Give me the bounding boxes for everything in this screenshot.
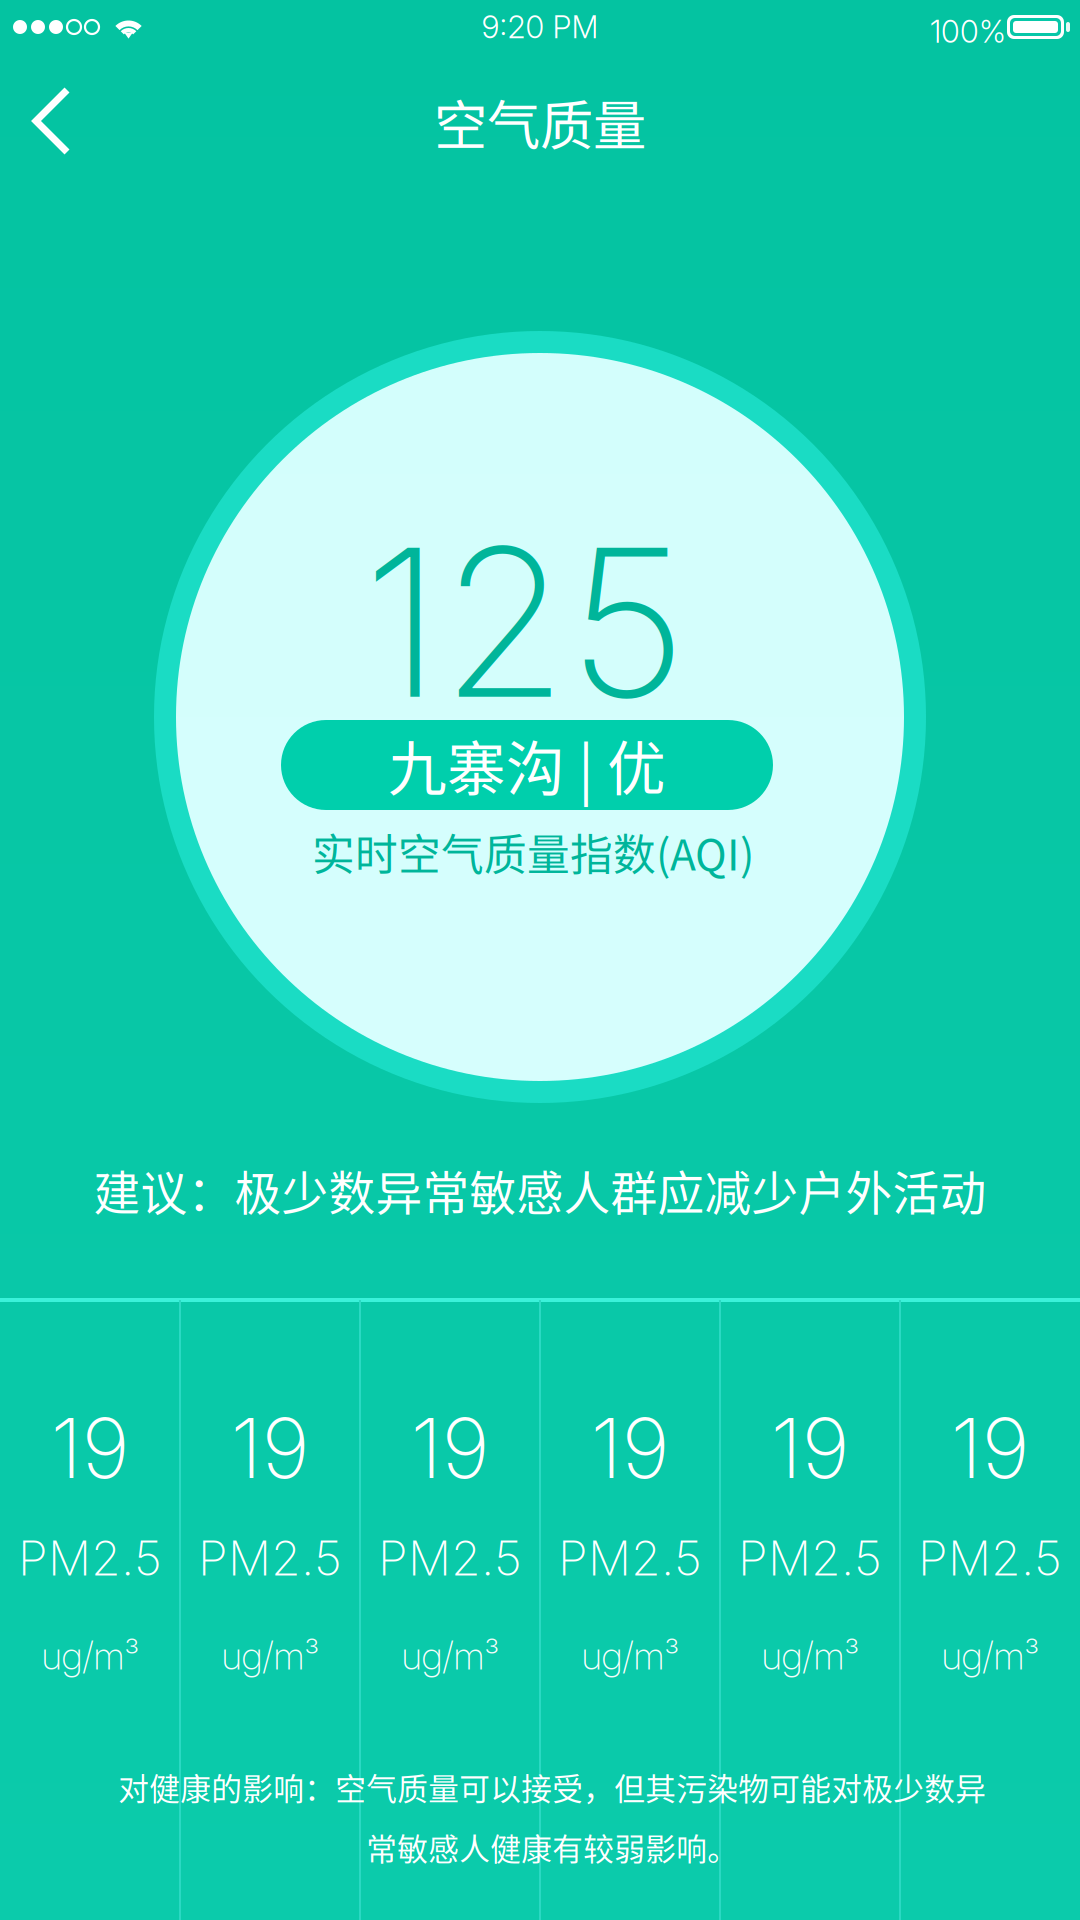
staticText: 对健康的影响：空气质量可以接受，但其污染物可能对极少数异 常敏感人健康有较弱影响… — [118, 1765, 986, 1869]
staticText: ug/m³ — [581, 1633, 678, 1679]
staticText: 19 — [950, 1398, 1029, 1498]
button[interactable]: Back — [0, 62, 120, 182]
staticText: PM2.5 — [198, 1529, 342, 1587]
staticText: 建议：极少数异常敏感人群应减少户外活动 — [93, 1156, 986, 1224]
staticText: ug/m³ — [761, 1633, 858, 1679]
staticText: ug/m³ — [401, 1633, 498, 1679]
staticText: PM2.5 — [738, 1529, 882, 1587]
staticText: 19 — [770, 1398, 849, 1498]
staticText: 125 — [363, 498, 687, 746]
staticText: 19 — [230, 1398, 309, 1498]
staticText: ug/m³ — [941, 1633, 1038, 1679]
staticText: ug/m³ — [41, 1633, 138, 1679]
staticText: 空气质量 — [434, 83, 646, 161]
staticText: 实时空气质量指数(AQI) — [312, 821, 754, 883]
staticText: PM2.5 — [378, 1529, 522, 1587]
staticText: ug/m³ — [221, 1633, 318, 1679]
staticText: 九寨沟 | 优 — [388, 722, 666, 807]
staticText: 19 — [590, 1398, 669, 1498]
staticText: 19 — [50, 1398, 129, 1498]
staticText: 9:20 PM — [481, 8, 598, 45]
staticText: 19 — [410, 1398, 489, 1498]
staticText: PM2.5 — [558, 1529, 702, 1587]
staticText: PM2.5 — [18, 1529, 162, 1587]
staticText: 100% — [930, 13, 1006, 50]
staticText: PM2.5 — [918, 1529, 1062, 1587]
